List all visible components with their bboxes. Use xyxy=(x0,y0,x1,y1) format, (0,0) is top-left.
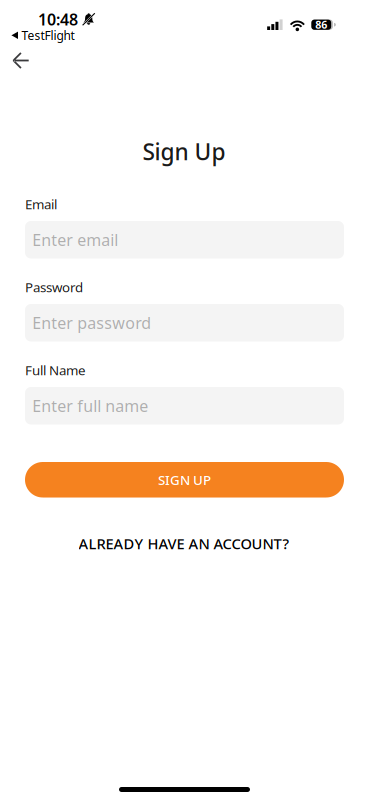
staticText: 86 xyxy=(315,18,327,32)
staticText: Password xyxy=(25,278,83,296)
staticText: Full Name xyxy=(25,361,86,379)
button[interactable]: Back xyxy=(0,40,40,80)
staticText: Sign Up xyxy=(142,136,225,166)
staticText: Enter full name xyxy=(32,395,148,416)
button[interactable]: SIGN UP xyxy=(25,462,344,497)
staticText: Enter password xyxy=(32,312,151,333)
staticText: ALREADY HAVE AN ACCOUNT? xyxy=(78,534,289,553)
staticText: SIGN UP xyxy=(158,471,211,489)
staticText: Email xyxy=(25,195,57,213)
button[interactable]: ALREADY HAVE AN ACCOUNT? xyxy=(59,530,309,556)
staticText: TestFlight xyxy=(22,27,75,43)
staticText: Enter email xyxy=(32,229,118,250)
staticText: 10:48 xyxy=(38,9,78,30)
